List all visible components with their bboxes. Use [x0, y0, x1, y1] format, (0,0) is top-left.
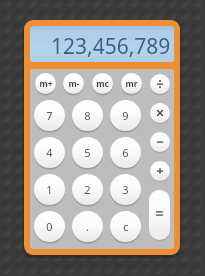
button[interactable]: 0 [34, 211, 65, 242]
button[interactable]: 6 [110, 137, 141, 168]
staticText: 3 [122, 182, 129, 197]
button[interactable]: 9 [110, 100, 141, 131]
staticText: mr [125, 78, 138, 90]
staticText: 1 [46, 182, 53, 197]
staticText: mc [96, 78, 109, 90]
button[interactable]: 4 [34, 137, 65, 168]
button[interactable]: 3 [110, 174, 141, 205]
staticText: 2 [84, 182, 91, 197]
button[interactable]: m- [63, 73, 84, 94]
button[interactable]: mc [92, 73, 113, 94]
button[interactable]: Subtract [150, 132, 170, 152]
staticText: 123,456,789 [51, 32, 171, 61]
staticText: 4 [46, 145, 53, 160]
button[interactable]: c [110, 211, 141, 242]
button[interactable]: Multiply [150, 103, 170, 123]
button[interactable]: m+ [35, 73, 56, 94]
button[interactable]: 7 [34, 100, 65, 131]
staticText: 6 [122, 145, 129, 160]
button[interactable]: 5 [72, 137, 103, 168]
button[interactable]: 1 [34, 174, 65, 205]
button[interactable]: mr [121, 73, 142, 94]
staticText: 7 [46, 108, 53, 123]
staticText: c [123, 219, 129, 234]
button[interactable]: Add [150, 161, 170, 181]
button[interactable]: Equals [149, 190, 170, 240]
staticText: 0 [46, 219, 53, 234]
button[interactable]: 8 [72, 100, 103, 131]
staticText: 9 [122, 108, 129, 123]
staticText: . [86, 219, 89, 234]
staticText: 8 [84, 108, 91, 123]
button[interactable]: Divide [150, 74, 170, 94]
staticText: m- [68, 78, 80, 90]
staticText: 5 [84, 145, 91, 160]
staticText: m+ [39, 78, 53, 90]
button[interactable]: . [72, 211, 103, 242]
button[interactable]: 2 [72, 174, 103, 205]
